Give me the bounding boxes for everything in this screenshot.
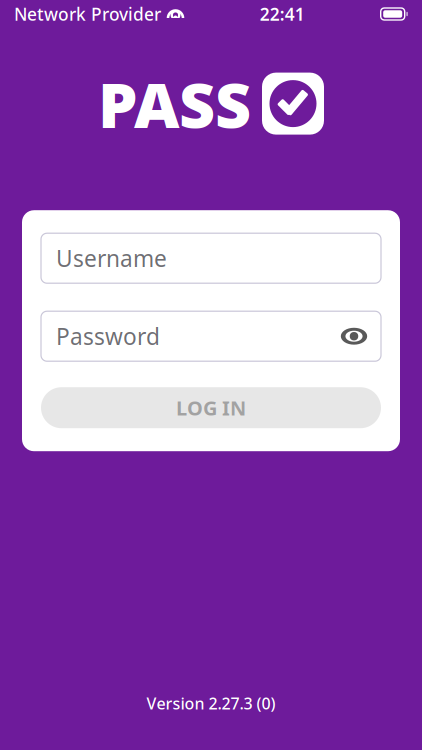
staticText: 22:41 xyxy=(260,2,305,25)
staticText: Password xyxy=(56,321,160,351)
staticText: LOG IN xyxy=(176,394,246,421)
button[interactable]: LOG IN xyxy=(41,387,381,428)
staticText: PASS xyxy=(98,62,251,145)
button[interactable]: Username xyxy=(41,233,381,283)
staticText: Network Provider xyxy=(14,2,161,25)
staticText: Username xyxy=(56,243,167,273)
staticText: Version 2.27.3 (0) xyxy=(146,693,275,714)
button[interactable]: Password xyxy=(41,311,381,361)
